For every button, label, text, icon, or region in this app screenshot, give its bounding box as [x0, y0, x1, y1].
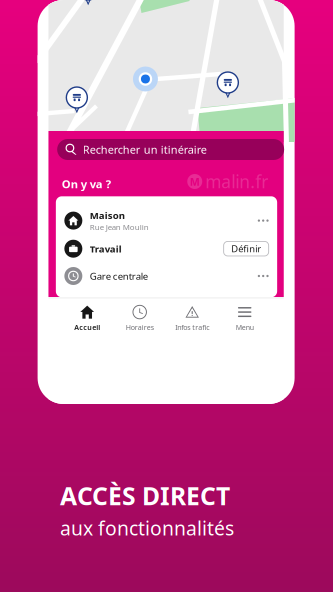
staticText: Travail — [90, 242, 122, 255]
staticText: Menu — [236, 323, 254, 332]
button[interactable]: Gare centrale — [56, 265, 277, 287]
staticText: Rechercher un itinéraire — [83, 142, 207, 157]
staticText: Rue Jean Moulin — [90, 222, 149, 232]
staticText: Accueil — [74, 323, 100, 332]
staticText: ACCÈS DIRECT — [60, 479, 230, 512]
button[interactable]: Rechercher un itinéraire — [57, 139, 284, 160]
staticText: Infos trafic — [175, 323, 209, 332]
staticText: M — [190, 174, 200, 189]
button[interactable]: Infos trafic — [166, 303, 218, 334]
button[interactable]: Menu — [218, 303, 271, 334]
staticText: Définir — [231, 242, 261, 255]
staticText: Gare centrale — [90, 270, 148, 282]
staticText: Maison — [90, 209, 125, 222]
button[interactable]: Travail — [56, 238, 277, 260]
staticText: aux fonctionnalités — [60, 515, 234, 541]
button[interactable]: Horaires — [113, 303, 166, 334]
staticText: Horaires — [126, 323, 154, 332]
button[interactable]: Maison — [56, 208, 277, 234]
button[interactable]: Accueil — [61, 303, 113, 334]
staticText: On y va ? — [62, 177, 111, 191]
staticText: malin.fr — [205, 170, 268, 193]
